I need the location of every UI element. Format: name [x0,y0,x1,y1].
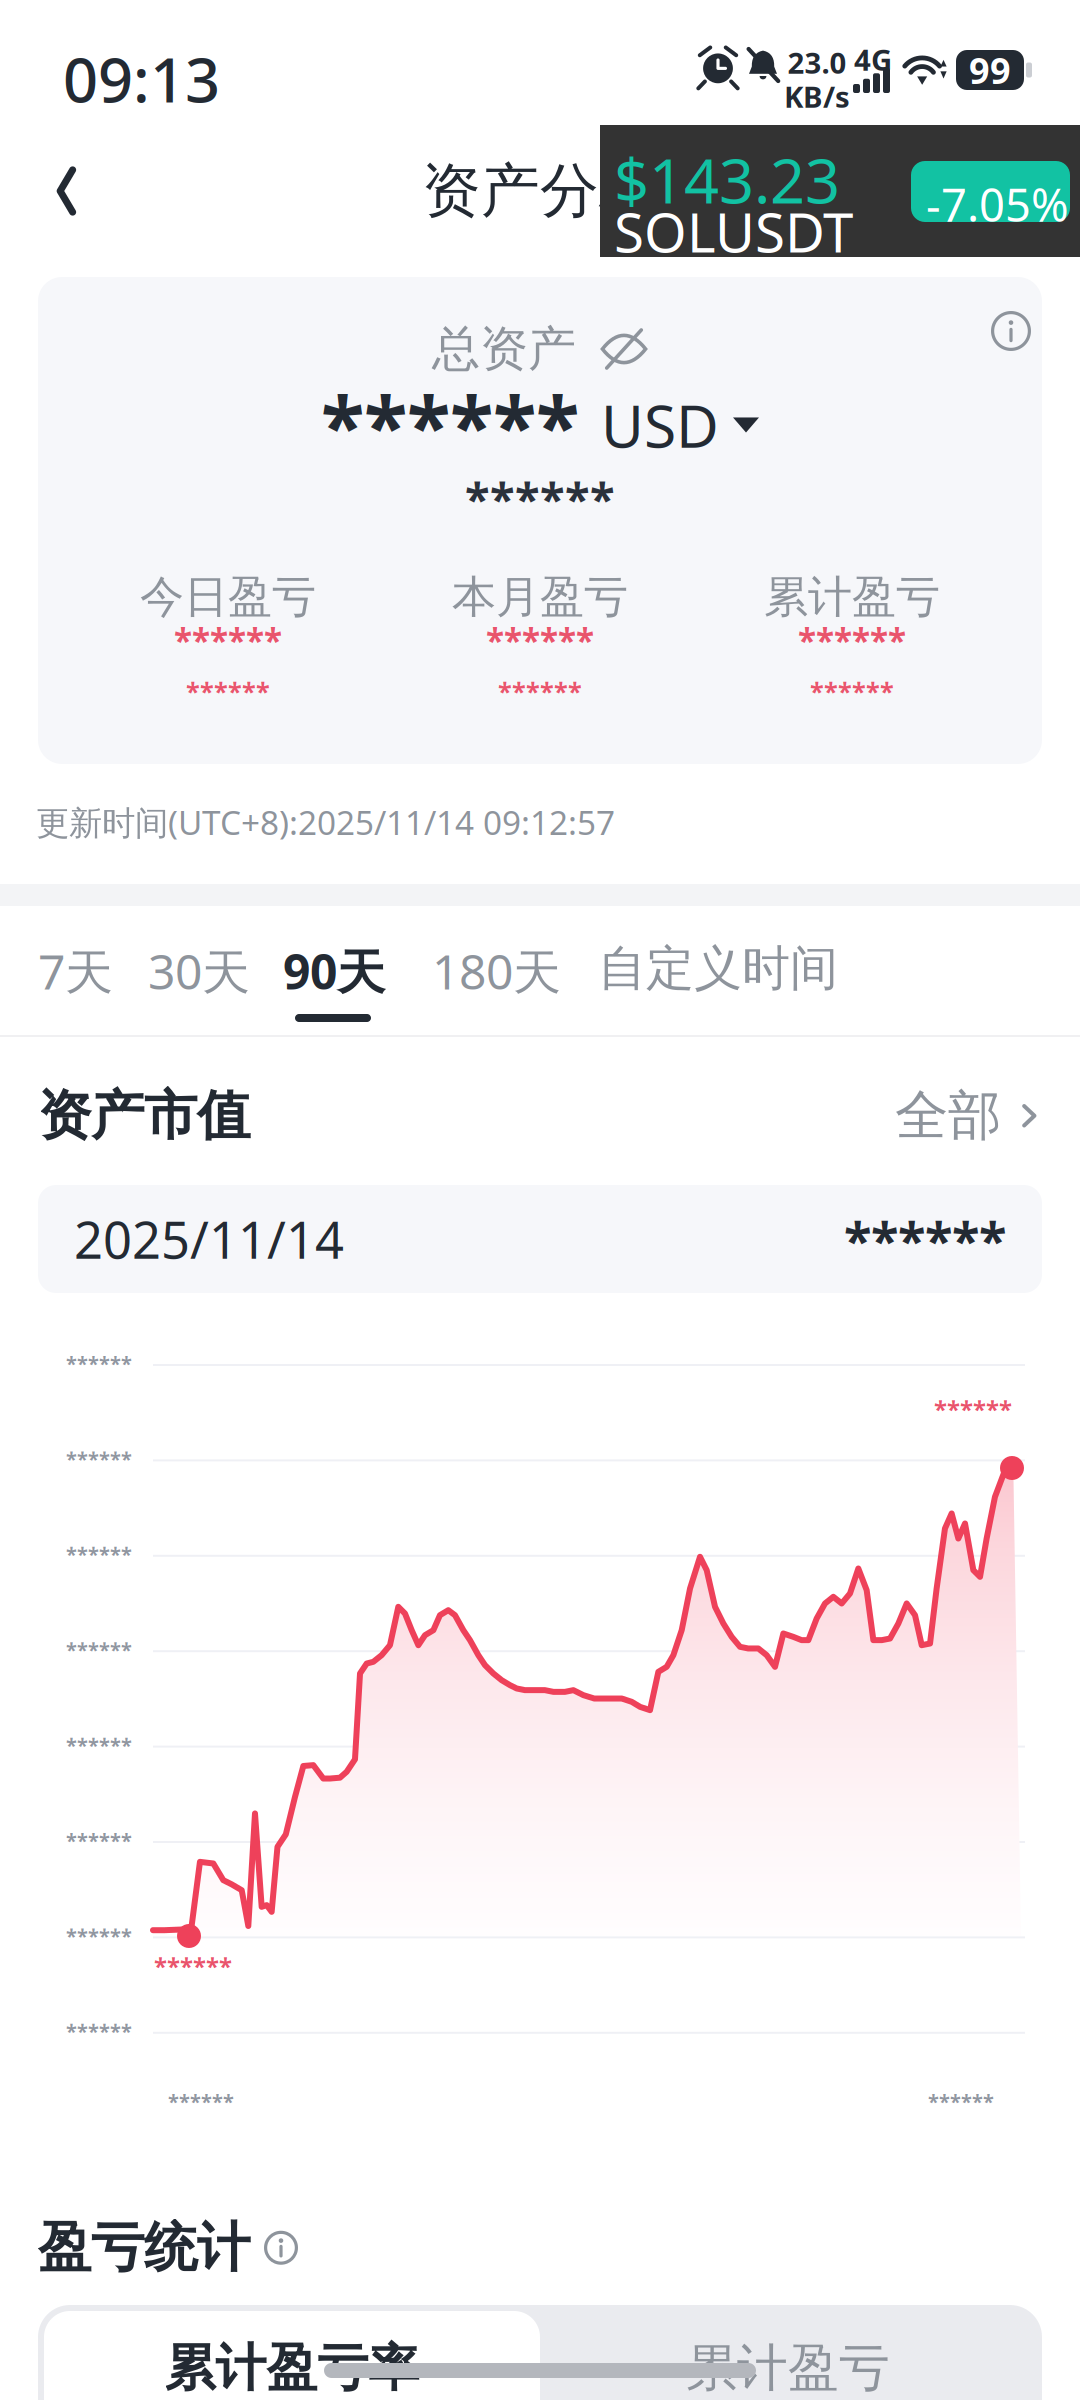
staticText: ****** [798,618,906,662]
staticText: SOLUSDT [614,195,853,268]
staticText: 09:13 [63,38,220,119]
button[interactable]: Hide balance [600,333,648,365]
button[interactable]: 180天 [432,906,550,1026]
button[interactable]: SOLUSDT price [600,125,1080,257]
button[interactable]: 全部 [895,1083,1042,1148]
staticText: 90天 [283,939,385,1003]
button[interactable]: Back [9,136,119,246]
staticText: 99 [969,46,1011,94]
staticText: ****** [928,2088,994,2115]
button[interactable]: 自定义时间 [598,906,810,1026]
staticText: ****** [174,618,282,662]
staticText: 今日盈亏 [140,570,316,624]
button[interactable]: Profit and loss info [264,2231,298,2265]
staticText: ****** [66,1350,132,1377]
staticText: 资产市值 [38,1083,250,1148]
staticText: ****** [66,1827,132,1854]
button[interactable]: 累计盈亏率 [44,2311,540,2400]
staticText: 本月盈亏 [452,570,628,624]
button[interactable]: 累计盈亏 [540,2311,1036,2400]
staticText: 全部 [895,1083,1001,1148]
staticText: 资产分析 [422,155,658,227]
staticText: 更新时间(UTC+8):2025/11/14 09:12:57 [36,800,615,844]
staticText: 累计盈亏率 [164,2337,419,2399]
staticText: ****** [168,2088,234,2115]
staticText: ****** [810,674,894,708]
staticText: 7天 [38,939,113,1003]
button[interactable]: 90天 [283,906,383,1026]
staticText: ****** [321,372,579,478]
staticText: ****** [66,1445,132,1472]
staticText: ****** [154,1950,232,1982]
staticText: ****** [66,1732,132,1758]
staticText: 总资产 [432,319,576,378]
button[interactable]: 30天 [148,906,252,1026]
button[interactable]: Information [976,296,1046,366]
staticText: USD [601,386,719,464]
staticText: $143.23 [614,139,840,220]
staticText: 4G [854,40,892,79]
staticText: ****** [465,468,615,528]
staticText: -7.05% [926,174,1069,234]
staticText: 累计盈亏 [764,570,940,624]
staticText: ****** [186,674,270,708]
staticText: ****** [66,1541,132,1567]
staticText: 23.0 [787,43,846,82]
staticText: 盈亏统计 [38,2215,250,2280]
staticText: ****** [66,1636,132,1663]
staticText: ****** [844,1205,1006,1273]
staticText: ****** [66,1922,132,1949]
staticText: 180天 [432,939,561,1003]
staticText: KB/s [784,77,850,116]
button[interactable]: USD [601,386,759,464]
staticText: ****** [486,618,594,662]
staticText: ****** [66,2018,132,2044]
button[interactable]: 7天 [38,906,110,1026]
staticText: 2025/11/14 [74,1205,344,1273]
staticText: 30天 [148,939,250,1003]
staticText: ****** [934,1393,1012,1425]
staticText: ****** [498,674,582,708]
staticText: 累计盈亏 [686,2337,890,2399]
staticText: 自定义时间 [598,939,838,998]
